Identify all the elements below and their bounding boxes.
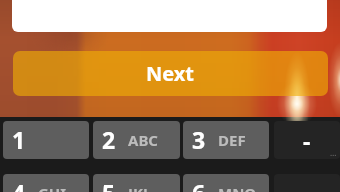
button[interactable]: 4 [3, 174, 89, 192]
button[interactable]: 1 [3, 121, 89, 159]
staticText: 4 [12, 177, 26, 192]
staticText: MNO [218, 183, 257, 192]
button[interactable]: 6 [183, 174, 269, 192]
staticText: DEF [218, 130, 246, 150]
staticText: Next [146, 60, 195, 87]
button[interactable]: Dash [274, 121, 340, 159]
button[interactable]: Next [13, 51, 328, 96]
staticText: 5 [102, 177, 116, 192]
staticText: 6 [192, 177, 206, 192]
staticText: GHI [38, 183, 67, 192]
staticText: ABC [128, 130, 158, 150]
staticText: JKL [128, 183, 152, 192]
staticText: 2 [102, 124, 116, 155]
button[interactable]: 2 [93, 121, 180, 159]
staticText: … [330, 147, 337, 158]
staticText: 3 [192, 124, 206, 155]
button[interactable]: 3 [183, 121, 269, 159]
button[interactable]: 5 [93, 174, 180, 192]
staticText: - [303, 125, 311, 156]
staticText: 1 [12, 124, 26, 155]
